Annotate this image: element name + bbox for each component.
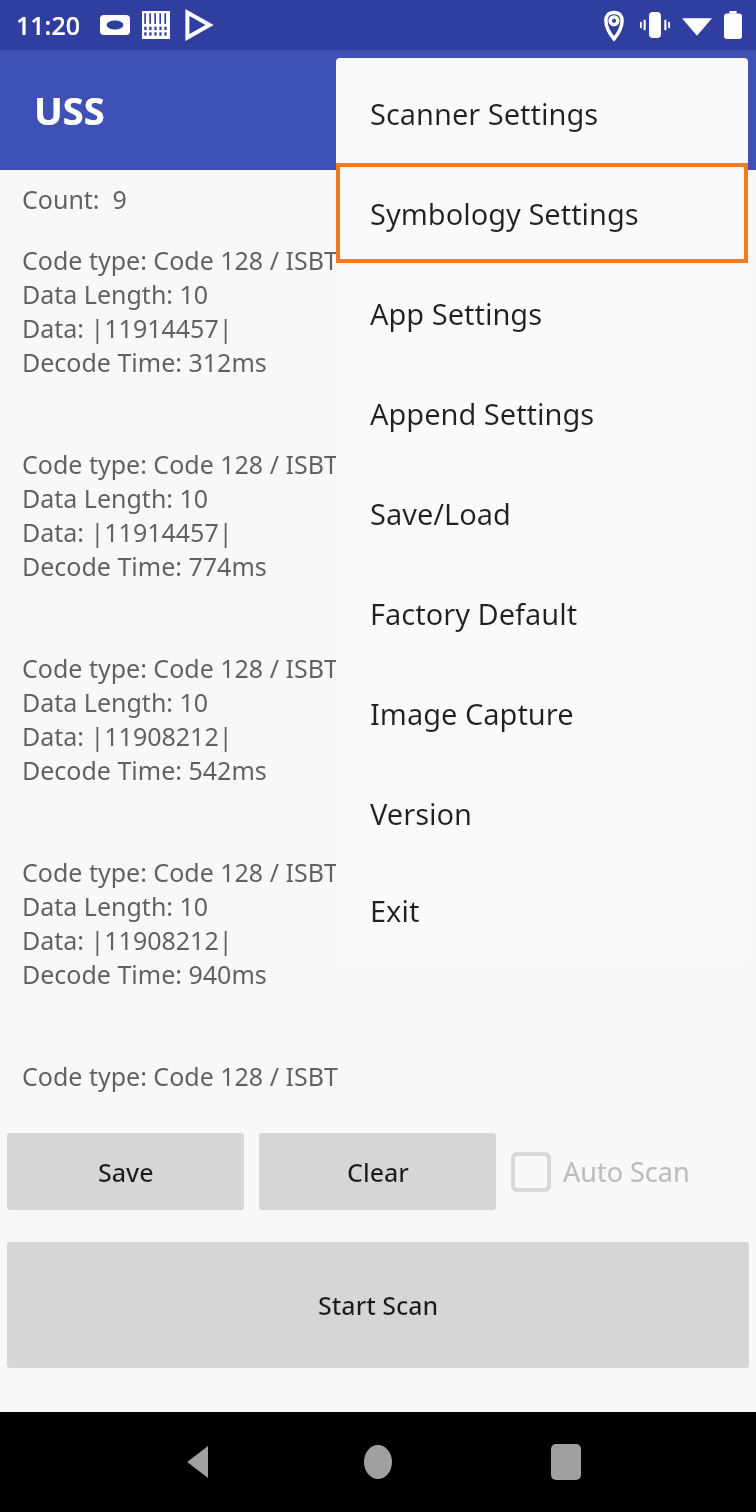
staticText: App Settings — [370, 294, 543, 333]
button[interactable]: Image Capture — [336, 663, 748, 763]
staticText: Decode Time: 940ms — [22, 957, 267, 991]
button[interactable]: Clear — [259, 1133, 496, 1210]
staticText: Save — [98, 1155, 154, 1189]
button[interactable]: Exit — [336, 863, 748, 958]
staticText: Data Length: 10 — [22, 481, 209, 515]
staticText: Exit — [370, 891, 420, 930]
button[interactable]: Auto Scan — [513, 1133, 690, 1210]
staticText: Data: |11908212| — [22, 719, 233, 753]
staticText: USS — [34, 84, 105, 136]
staticText: Image Capture — [370, 694, 574, 733]
button[interactable]: Version — [336, 763, 748, 863]
staticText: Factory Default — [370, 594, 578, 633]
staticText: Scanner Settings — [370, 94, 599, 133]
button[interactable]: Start Scan — [7, 1242, 749, 1368]
staticText: Code type: Code 128 / ISBT — [22, 1059, 338, 1093]
staticText: Code type: Code 128 / ISBT — [22, 243, 338, 277]
staticText: Count: 9 — [22, 182, 127, 216]
button[interactable]: Scanner Settings — [336, 63, 748, 163]
staticText: 11:20 — [16, 8, 81, 42]
button[interactable]: Symbology Settings — [336, 163, 748, 263]
button[interactable]: Append Settings — [336, 363, 748, 463]
staticText: Data: |11908212| — [22, 923, 233, 957]
staticText: Code type: Code 128 / ISBT — [22, 447, 338, 481]
staticText: Data Length: 10 — [22, 685, 209, 719]
staticText: Start Scan — [318, 1288, 439, 1322]
button[interactable]: Save/Load — [336, 463, 748, 563]
button[interactable]: Factory Default — [336, 563, 748, 663]
staticText: Data Length: 10 — [22, 277, 209, 311]
button[interactable]: App Settings — [336, 263, 748, 363]
staticText: Code type: Code 128 / ISBT — [22, 855, 338, 889]
button[interactable]: Recents — [521, 1417, 611, 1507]
button[interactable]: Home — [333, 1417, 423, 1507]
staticText: Data Length: 10 — [22, 889, 209, 923]
staticText: Code type: Code 128 / ISBT — [22, 651, 338, 685]
staticText: Data: |11914457| — [22, 515, 233, 549]
staticText: Version — [370, 794, 472, 833]
staticText: Decode Time: 542ms — [22, 753, 267, 787]
staticText: Decode Time: 312ms — [22, 345, 267, 379]
staticText: Symbology Settings — [370, 194, 639, 233]
staticText: Data: |11914457| — [22, 311, 233, 345]
staticText: Append Settings — [370, 394, 595, 433]
staticText: Clear — [347, 1155, 409, 1189]
staticText: Auto Scan — [563, 1153, 690, 1190]
button[interactable]: Back — [155, 1417, 245, 1507]
staticText: Save/Load — [370, 494, 511, 533]
staticText: Decode Time: 774ms — [22, 549, 267, 583]
button[interactable]: Save — [7, 1133, 244, 1210]
